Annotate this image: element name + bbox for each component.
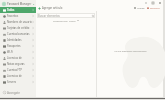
button[interactable]: Close (156, 0, 163, 6)
staticText: Avangate (7, 91, 20, 95)
button[interactable]: Nombres de usuario (0, 19, 36, 25)
button[interactable]: Licencias de conducir (0, 55, 36, 61)
button[interactable]: Cuentas bancarias (0, 31, 36, 37)
button[interactable]: Servers (0, 79, 36, 85)
button[interactable]: Ayuda (134, 6, 145, 9)
button[interactable]: Cuentas FTP (0, 67, 36, 73)
staticText: Password Manager (7, 2, 32, 6)
button[interactable]: Buscar elementos (37, 13, 95, 18)
button[interactable]: Todos (0, 7, 36, 13)
staticText: No hay elementos seleccionados (114, 50, 147, 53)
staticText: v 1.0 (33, 2, 36, 5)
staticText: Cuentas bancarias (7, 32, 32, 36)
staticText: Todos (7, 8, 32, 12)
staticText: Ayuda (137, 6, 145, 9)
button[interactable]: Identidades (0, 37, 36, 43)
staticText: Ordenar por: Título (53, 19, 76, 22)
staticText: Buscar elementos (38, 14, 60, 18)
button[interactable]: Notas seguras (0, 61, 36, 67)
button[interactable]: Agregar artículo (38, 6, 63, 10)
staticText: Licencias de software (7, 74, 32, 78)
button[interactable]: Pasaportes (0, 43, 36, 49)
staticText: Wi-Fi (7, 50, 32, 54)
button[interactable]: Ordenar por: Título (36, 18, 96, 23)
staticText: Notas seguras (7, 62, 32, 66)
staticText: Servers (7, 80, 32, 84)
staticText: Nombres de usuario (7, 20, 32, 24)
button[interactable]: Minimize (142, 0, 149, 6)
staticText: Cuentas FTP (7, 68, 32, 72)
button[interactable]: Maximize (149, 0, 156, 6)
button[interactable]: Favoritos (0, 13, 36, 19)
staticText: Identidades (7, 38, 32, 42)
staticText: Tarjetas de crédito (7, 26, 32, 30)
button[interactable]: Renovar (147, 6, 160, 9)
staticText: Pasaportes (7, 44, 32, 48)
staticText: Renovar (150, 6, 160, 9)
staticText: Licencias de conducir (7, 56, 32, 60)
staticText: Favoritos (7, 14, 32, 18)
staticText: Agregar artículo (42, 6, 63, 10)
button[interactable]: Wi-Fi (0, 49, 36, 55)
button[interactable]: Licencias de software (0, 73, 36, 79)
button[interactable]: Tarjetas de crédito (0, 25, 36, 31)
